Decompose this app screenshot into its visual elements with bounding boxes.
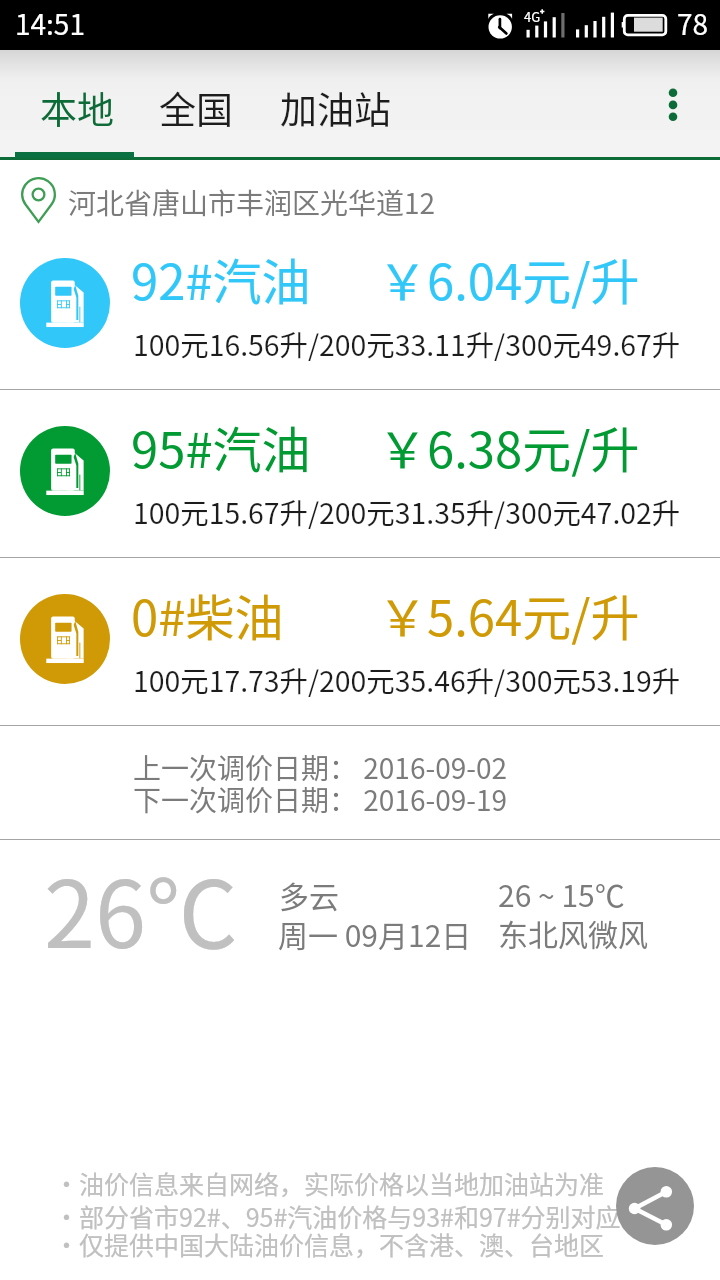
staticText: ￥6.38元/升 [378,411,640,482]
staticText: 河北省唐山市丰润区光华道12 [68,182,436,223]
staticText: 加油站 [280,81,391,135]
staticText: 100元16.56升/200元33.11升/300元49.67升 [133,323,681,364]
staticText: 全国 [159,81,233,135]
staticText: 78 [677,3,709,44]
staticText: ￥6.04元/升 [378,243,640,314]
staticText: 下一次调价日期： 2016-09-19 [133,779,508,820]
staticText: 上一次调价日期： 2016-09-02 [133,747,508,788]
staticText: 26 ~ 15℃ [498,872,625,915]
button[interactable]: Share [616,1167,694,1245]
staticText: 0#柴油 [131,579,284,650]
staticText: ·油价信息来自网络，实际价格以当地加油站为准 [54,1165,605,1201]
button[interactable]: 95#汽油 [0,390,720,557]
staticText: ·仅提供中国大陆油价信息，不含港、澳、台地区 [54,1226,605,1262]
staticText: 100元17.73升/200元35.46升/300元53.19升 [133,659,681,700]
button[interactable]: 加油站 [261,56,410,160]
button[interactable]: More options [649,70,697,118]
staticText: 多云 [279,873,339,916]
button[interactable]: 92#汽油 [0,222,720,389]
staticText: ￥5.64元/升 [378,579,640,650]
staticText: 92#汽油 [131,243,311,314]
staticText: 26℃ [44,841,239,974]
button[interactable]: 本地 [21,56,133,160]
button[interactable]: 河北省唐山市丰润区光华道12 [0,160,720,222]
button[interactable]: 0#柴油 [0,558,720,725]
staticText: 本地 [40,81,114,135]
button[interactable]: 全国 [140,56,252,160]
staticText: 14:51 [15,3,85,44]
staticText: 周一 09月12日 [278,912,472,955]
staticText: 100元15.67升/200元31.35升/300元47.02升 [133,491,681,532]
staticText: ·部分省市92#、95#汽油价格与93#和97#分别对应 [54,1198,621,1234]
staticText: 东北风微风 [498,911,648,954]
staticText: 4G [524,7,541,26]
staticText: 95#汽油 [131,411,311,482]
